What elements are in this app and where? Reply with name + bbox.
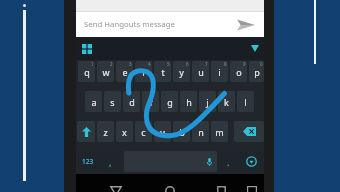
button[interactable]: Home (159, 186, 181, 192)
staticText: r (142, 66, 146, 78)
staticText: e (122, 66, 128, 78)
staticText: m (215, 126, 224, 138)
staticText: 0 (260, 61, 263, 67)
staticText: o (236, 66, 242, 78)
button[interactable]: j (199, 91, 216, 112)
button[interactable]: t (154, 61, 171, 82)
staticText: w (102, 66, 110, 78)
button[interactable]: r (135, 61, 152, 82)
button[interactable]: z (97, 121, 114, 142)
staticText: . (227, 156, 230, 168)
staticText: p (254, 66, 260, 78)
button[interactable]: k (218, 91, 235, 112)
staticText: Send Hangouts message (84, 19, 175, 30)
staticText: 2 (110, 61, 113, 67)
button[interactable]: Recent apps (210, 186, 232, 192)
staticText: u (198, 66, 204, 78)
button[interactable]: m (211, 121, 228, 142)
staticText: k (224, 96, 229, 108)
button[interactable]: b (173, 121, 190, 142)
staticText: 4 (148, 61, 151, 67)
button[interactable]: f (142, 91, 159, 112)
button[interactable]: Backspace (234, 121, 264, 142)
button[interactable]: , (99, 151, 122, 172)
button[interactable]: d (123, 91, 140, 112)
button[interactable]: Switch keyboard (241, 186, 263, 192)
button[interactable]: l (237, 91, 254, 112)
staticText: s (110, 96, 115, 108)
button[interactable]: x (116, 121, 133, 142)
button[interactable]: . (218, 151, 239, 172)
staticText: h (186, 96, 192, 108)
staticText: t (161, 66, 165, 78)
staticText: j (206, 96, 209, 108)
staticText: 6 (186, 61, 189, 67)
staticText: v (160, 126, 165, 138)
button[interactable]: o (230, 61, 247, 82)
staticText: c (141, 126, 146, 138)
button[interactable]: u (192, 61, 209, 82)
staticText: z (103, 126, 108, 138)
button[interactable]: s (104, 91, 121, 112)
staticText: i (218, 66, 221, 78)
button[interactable]: Emoji (240, 151, 263, 172)
staticText: 123 (82, 157, 94, 166)
button[interactable]: p (249, 61, 264, 82)
staticText: 5 (167, 61, 170, 67)
staticText: g (167, 96, 173, 108)
staticText: x (122, 126, 127, 138)
button[interactable]: Space (124, 151, 217, 172)
button[interactable]: g (161, 91, 178, 112)
button[interactable]: e (116, 61, 133, 82)
staticText: , (109, 156, 112, 168)
staticText: 3 (129, 61, 132, 67)
button[interactable]: y (173, 61, 190, 82)
staticText: 9 (243, 61, 246, 67)
staticText: f (149, 96, 153, 108)
button[interactable]: q (78, 61, 95, 82)
button[interactable]: h (180, 91, 197, 112)
staticText: 1 (91, 61, 94, 67)
staticText: 8 (224, 61, 227, 67)
staticText: l (244, 96, 247, 108)
staticText: n (198, 126, 204, 138)
button[interactable]: c (135, 121, 152, 142)
staticText: y (179, 66, 184, 78)
other: Send (237, 18, 255, 32)
button[interactable]: 123 (78, 151, 98, 172)
button[interactable]: Apps (79, 37, 95, 60)
button[interactable]: Send Hangouts message (76, 12, 264, 37)
button[interactable]: v (154, 121, 171, 142)
staticText: 7 (205, 61, 208, 67)
button[interactable]: w (97, 61, 114, 82)
button[interactable]: Shift (77, 121, 95, 142)
staticText: q (84, 66, 90, 78)
button[interactable]: Back (105, 186, 127, 192)
staticText: a (91, 96, 97, 108)
button[interactable]: Collapse keyboard (247, 37, 263, 60)
staticText: b (179, 126, 185, 138)
button[interactable]: n (192, 121, 209, 142)
button[interactable]: i (211, 61, 228, 82)
staticText: d (129, 96, 135, 108)
button[interactable]: a (85, 91, 102, 112)
